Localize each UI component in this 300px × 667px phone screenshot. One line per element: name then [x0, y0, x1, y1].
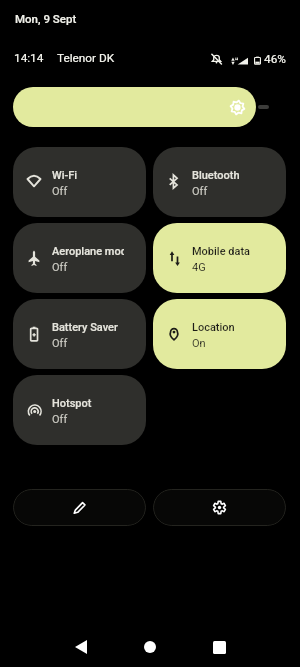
button[interactable]: Mobile data — [153, 223, 286, 293]
staticText: 14:14 — [14, 51, 44, 65]
button[interactable]: Settings — [153, 489, 286, 526]
staticText: Wi-Fi — [52, 169, 78, 182]
staticText: Bluetooth — [192, 169, 240, 182]
staticText: Aeroplane mode — [52, 245, 124, 258]
staticText: Off — [52, 261, 68, 274]
button[interactable]: Wi-Fi — [13, 147, 146, 217]
button[interactable]: Hotspot — [13, 375, 146, 445]
staticText: Mon, 9 Sept — [15, 12, 77, 25]
staticText: Mobile data — [192, 245, 250, 258]
button[interactable]: Bluetooth — [153, 147, 286, 217]
button[interactable]: Brightness — [13, 87, 286, 127]
staticText: Off — [52, 413, 68, 426]
button[interactable]: Home — [128, 625, 172, 667]
button[interactable]: Recents — [197, 625, 241, 667]
button[interactable]: Battery Saver — [13, 299, 146, 369]
staticText: Telenor DK — [57, 51, 115, 65]
button[interactable]: Location — [153, 299, 286, 369]
staticText: On — [192, 337, 206, 350]
button[interactable]: Back — [59, 625, 103, 667]
button[interactable]: Edit — [13, 489, 146, 526]
staticText: Hotspot — [52, 397, 92, 410]
button[interactable]: Aeroplane mode — [13, 223, 146, 293]
staticText: Battery Saver — [52, 321, 118, 334]
staticText: Off — [52, 185, 68, 198]
staticText: 46% — [264, 52, 286, 66]
staticText: Off — [192, 185, 208, 198]
staticText: Off — [52, 337, 68, 350]
staticText: 4G — [192, 261, 206, 274]
staticText: Location — [192, 321, 235, 334]
